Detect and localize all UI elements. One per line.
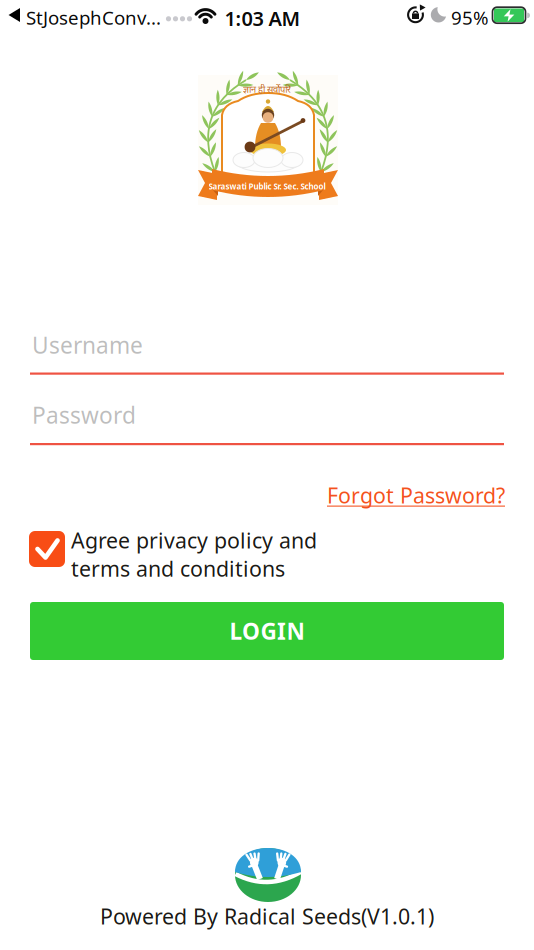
button[interactable]: Password <box>30 400 504 446</box>
staticText: Forgot Password? <box>327 481 505 509</box>
staticText: LOGIN <box>229 616 304 646</box>
button[interactable]: Back to StJosephConv <box>0 0 165 30</box>
staticText: Powered By Radical Seeds(V1.0.1) <box>100 902 434 930</box>
button[interactable]: Username <box>30 330 504 376</box>
staticText: StJosephConv... <box>26 5 161 30</box>
staticText: 95% <box>451 5 489 30</box>
button[interactable]: LOGIN <box>30 602 504 660</box>
staticText: Username <box>32 330 143 360</box>
button[interactable]: Agree privacy policy and terms and condi… <box>29 526 349 584</box>
staticText: ज्ञान ही सर्वोपरि <box>243 83 291 95</box>
button[interactable]: Forgot Password? <box>295 481 505 513</box>
staticText: Saraswati Public Sr. Sec. School <box>208 181 325 192</box>
staticText: Password <box>32 400 136 430</box>
staticText: Agree privacy policy and terms and condi… <box>71 526 317 583</box>
staticText: 1:03 AM <box>224 5 300 32</box>
